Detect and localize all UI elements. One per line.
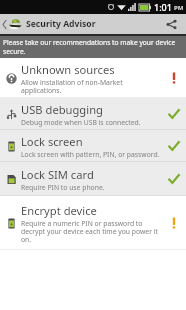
staticText: USB debugging [21,102,103,117]
staticText: Encrypt device [21,203,97,218]
staticText: 1:01 [154,1,172,13]
button[interactable]: Lock SIM card [0,162,186,196]
button[interactable]: Unknown sources [0,58,186,98]
button[interactable]: Lock screen [0,130,186,162]
staticText: Lock screen [21,134,83,149]
button[interactable]: Share [160,14,182,34]
staticText: Unknown sources [21,62,115,77]
button[interactable]: Navigate up [0,14,22,34]
staticText: Allow installation of non-Market applica… [21,78,123,95]
button[interactable]: USB debugging [0,98,186,130]
staticText: PM [174,4,184,12]
staticText: Require a numeric PIN or password to dec… [21,219,158,244]
staticText: Require PIN to use phone. [21,183,105,192]
staticText: Lock screen with pattern, PIN, or passwo… [21,150,160,159]
staticText: Debug mode when USB is connected. [21,118,141,127]
button[interactable]: Encrypt device [0,196,186,250]
staticText: Security Advisor [26,18,96,30]
staticText: Lock SIM card [21,167,94,182]
staticText: Please take our recommendations to make … [3,38,182,56]
